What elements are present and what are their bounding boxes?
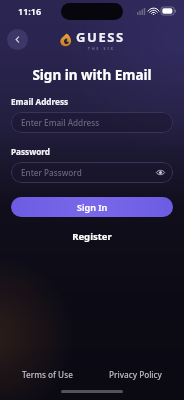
- staticText: GUESS: [76, 28, 125, 46]
- staticText: Sign In: [77, 201, 108, 213]
- button[interactable]: Privacy Policy: [109, 369, 162, 380]
- button[interactable]: Enter Email Address: [11, 112, 173, 133]
- button[interactable]: Enter Password: [11, 162, 173, 183]
- button[interactable]: Sign In: [11, 197, 173, 217]
- staticText: Password: [11, 146, 51, 157]
- staticText: Enter Email Address: [21, 117, 100, 128]
- button[interactable]: Back: [7, 29, 28, 50]
- staticText: Enter Password: [21, 167, 82, 178]
- button[interactable]: Show password: [155, 167, 166, 178]
- staticText: 11:16: [18, 5, 42, 17]
- staticText: T H E S I X: [88, 46, 114, 51]
- staticText: Email Address: [11, 96, 69, 107]
- staticText: Sign in with Email: [0, 66, 184, 84]
- button[interactable]: Terms of Use: [22, 369, 73, 380]
- button[interactable]: Register: [11, 230, 173, 243]
